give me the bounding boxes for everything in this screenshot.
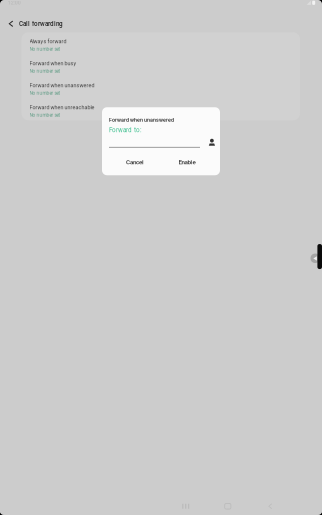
button[interactable]: Always forward <box>21 32 300 54</box>
staticText: No number set <box>29 68 60 74</box>
staticText: Always forward <box>29 38 66 44</box>
staticText: Forward when unreachable <box>29 104 94 110</box>
staticText: Forward when busy <box>29 60 76 66</box>
staticText: Forward when unanswered <box>109 117 174 123</box>
button[interactable]: Cancel <box>109 155 161 169</box>
staticText: Enable <box>178 159 195 166</box>
button[interactable]: Edge panel <box>310 244 322 272</box>
button[interactable]: Forward when unanswered <box>21 76 300 98</box>
button[interactable]: Forward when busy <box>21 54 300 76</box>
staticText: Cancel <box>126 159 144 166</box>
button[interactable]: Enable <box>161 155 213 169</box>
staticText: Forward when unanswered <box>29 82 94 88</box>
staticText: Forward to: <box>109 126 142 134</box>
staticText: 12:00 <box>8 0 21 6</box>
staticText: Call forwarding <box>19 20 63 27</box>
staticText: No number set <box>29 46 60 52</box>
button[interactable]: Back <box>4 17 18 30</box>
button[interactable]: Forward when unreachable <box>21 98 300 120</box>
staticText: No number set <box>29 112 60 118</box>
staticText: No number set <box>29 90 60 96</box>
